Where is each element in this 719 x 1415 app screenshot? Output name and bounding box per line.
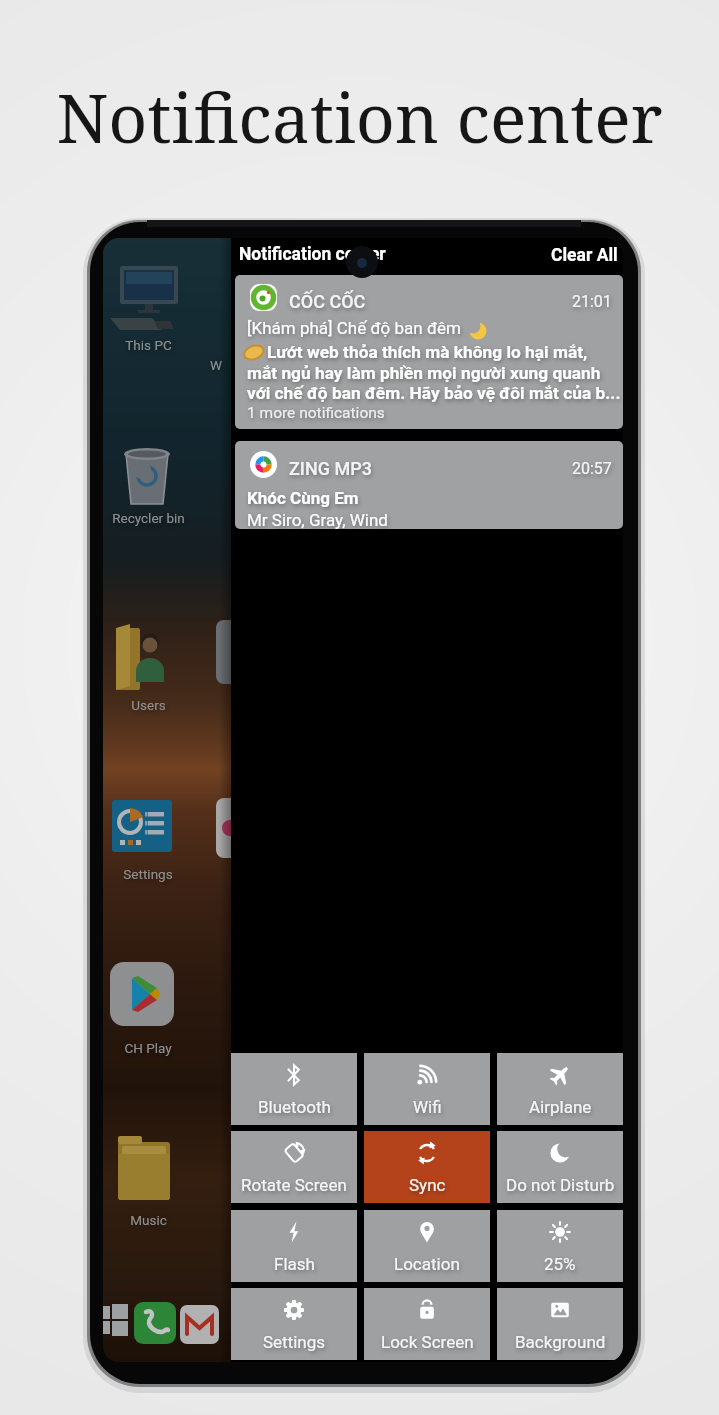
staticText: Recycler bin xyxy=(112,510,185,526)
staticText: Notification center xyxy=(56,70,663,163)
button[interactable]: 25% xyxy=(497,1210,623,1282)
staticText: This PC xyxy=(125,337,172,353)
staticText: ZING MP3 xyxy=(289,458,372,479)
button[interactable]: CỐC CỐC xyxy=(235,275,623,429)
staticText: Clear All xyxy=(551,245,618,266)
button[interactable]: ZING MP3 xyxy=(235,441,623,529)
button[interactable]: Clear All xyxy=(523,238,618,272)
staticText: Mr Siro, Gray, Wind xyxy=(247,510,388,529)
staticText: Settings xyxy=(123,866,173,882)
button[interactable]: Background xyxy=(497,1288,623,1360)
staticText: Sync xyxy=(409,1175,446,1195)
staticText: 1 more notifications xyxy=(247,404,385,422)
staticText: Flash xyxy=(274,1254,315,1274)
staticText: Rotate Screen xyxy=(241,1175,347,1195)
staticText: Bluetooth xyxy=(258,1097,331,1117)
staticText: với chế độ ban đêm. Hãy bảo vệ đôi mắt c… xyxy=(247,383,621,403)
button[interactable]: Lock Screen xyxy=(364,1288,490,1360)
staticText: 20:57 xyxy=(572,459,612,478)
staticText: Music xyxy=(130,1212,167,1228)
button[interactable]: Sync xyxy=(364,1131,490,1203)
button[interactable]: Flash xyxy=(231,1210,357,1282)
staticText: Khóc Cùng Em xyxy=(247,488,359,508)
button[interactable]: Bluetooth xyxy=(231,1053,357,1125)
button[interactable]: Rotate Screen xyxy=(231,1131,357,1203)
staticText: Lock Screen xyxy=(381,1332,474,1352)
staticText: Airplane xyxy=(529,1097,592,1117)
staticText: CỐC CỐC xyxy=(289,291,366,312)
staticText: Background xyxy=(515,1332,606,1352)
staticText: Notification center xyxy=(239,244,386,265)
staticText: Users xyxy=(131,697,166,713)
staticText: Location xyxy=(394,1254,460,1274)
button[interactable]: Settings xyxy=(231,1288,357,1360)
staticText: Wifi xyxy=(413,1097,442,1117)
staticText: W xyxy=(210,357,222,373)
staticText: CH Play xyxy=(124,1040,172,1056)
staticText: Settings xyxy=(263,1332,326,1352)
staticText: 25% xyxy=(544,1254,576,1274)
staticText: 21:01 xyxy=(572,292,612,311)
staticText: Lướt web thỏa thích mà không lo hại mắt, xyxy=(267,342,588,362)
staticText: Do not Disturb xyxy=(506,1175,615,1195)
button[interactable]: Airplane xyxy=(497,1053,623,1125)
staticText: [Khám phá] Chế độ ban đêm xyxy=(247,318,462,338)
button[interactable]: Wifi xyxy=(364,1053,490,1125)
staticText: mắt ngủ hay làm phiền mọi người xung qua… xyxy=(247,363,601,383)
button[interactable]: Do not Disturb xyxy=(497,1131,623,1203)
button[interactable]: Location xyxy=(364,1210,490,1282)
